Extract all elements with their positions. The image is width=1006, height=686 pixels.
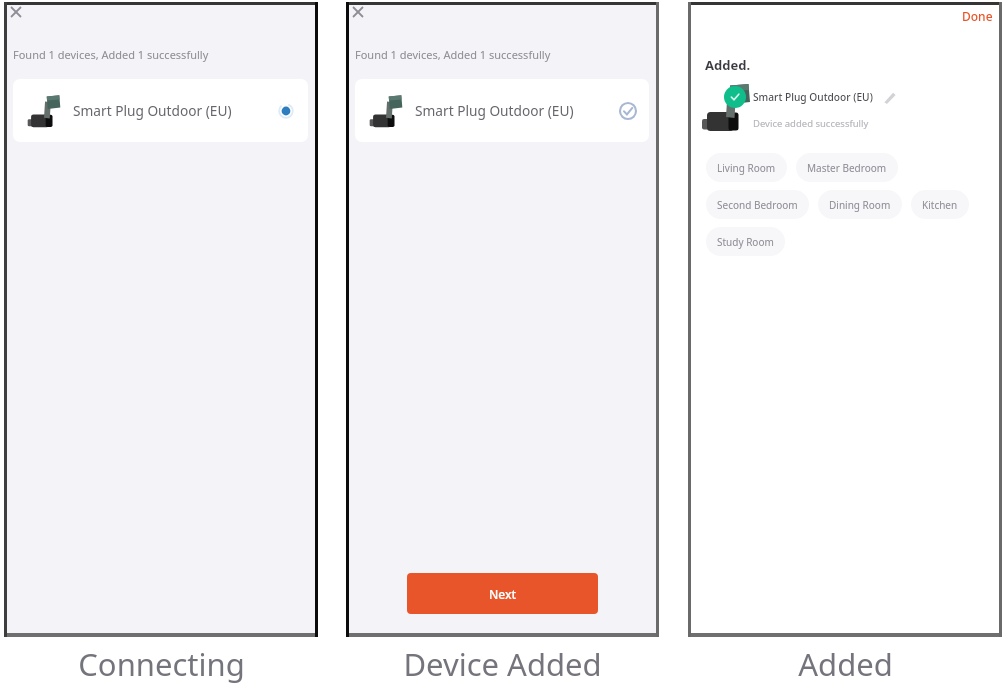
staticText: Connecting (78, 643, 245, 685)
staticText: Added. (705, 56, 751, 74)
staticText: Smart Plug Outdoor (EU) (73, 101, 232, 120)
button[interactable]: Dining Room (818, 190, 902, 219)
button[interactable]: Done (959, 6, 996, 26)
button[interactable]: Kitchen (911, 190, 969, 219)
staticText: Second Bedroom (717, 198, 798, 212)
button[interactable]: Close (347, 1, 369, 23)
staticText: Added (798, 643, 893, 685)
button[interactable]: Study Room (706, 227, 785, 256)
staticText: Found 1 devices, Added 1 successfully (355, 47, 551, 62)
staticText: Next (489, 586, 517, 602)
staticText: Dining Room (829, 198, 891, 212)
button[interactable]: Close (5, 1, 27, 23)
staticText: Done (962, 8, 993, 24)
staticText: Device Added (403, 643, 602, 685)
button[interactable]: Edit name (883, 90, 897, 104)
button[interactable]: Next (407, 573, 598, 614)
button[interactable]: Smart Plug Outdoor (EU) (13, 79, 308, 142)
staticText: Master Bedroom (807, 161, 887, 175)
button[interactable]: Living Room (706, 153, 787, 182)
staticText: Living Room (717, 161, 776, 175)
other: Connecting (277, 102, 295, 120)
other: Added successfully (724, 86, 746, 108)
staticText: Smart Plug Outdoor (EU) (753, 90, 873, 104)
staticText: Found 1 devices, Added 1 successfully (13, 47, 209, 62)
button[interactable]: Smart Plug Outdoor (EU) (355, 79, 649, 142)
button[interactable]: Second Bedroom (706, 190, 809, 219)
staticText: Study Room (717, 235, 774, 249)
other: Device added (619, 102, 637, 120)
staticText: Smart Plug Outdoor (EU) (415, 101, 574, 120)
staticText: Device added successfully (753, 117, 869, 130)
staticText: Kitchen (922, 198, 958, 212)
button[interactable]: Master Bedroom (796, 153, 898, 182)
